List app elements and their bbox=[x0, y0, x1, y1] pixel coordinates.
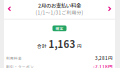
staticText: 割引・クーポン bbox=[6, 64, 34, 68]
staticText: 1,163 bbox=[48, 38, 75, 49]
staticText: 2月のお支払い料金 bbox=[38, 2, 81, 8]
staticText: 利用料金 bbox=[6, 56, 22, 60]
staticText: 合計 bbox=[37, 43, 47, 49]
button[interactable]: 次の月 bbox=[104, 3, 115, 15]
staticText: 確定 bbox=[55, 26, 63, 30]
staticText: 3,281円 bbox=[95, 55, 113, 61]
staticText: -2,118円 bbox=[93, 64, 113, 68]
staticText: (1/1〜1/31ご利用分) bbox=[35, 10, 83, 15]
staticText: 円 bbox=[77, 43, 82, 49]
button[interactable]: 前の月 bbox=[4, 3, 15, 15]
